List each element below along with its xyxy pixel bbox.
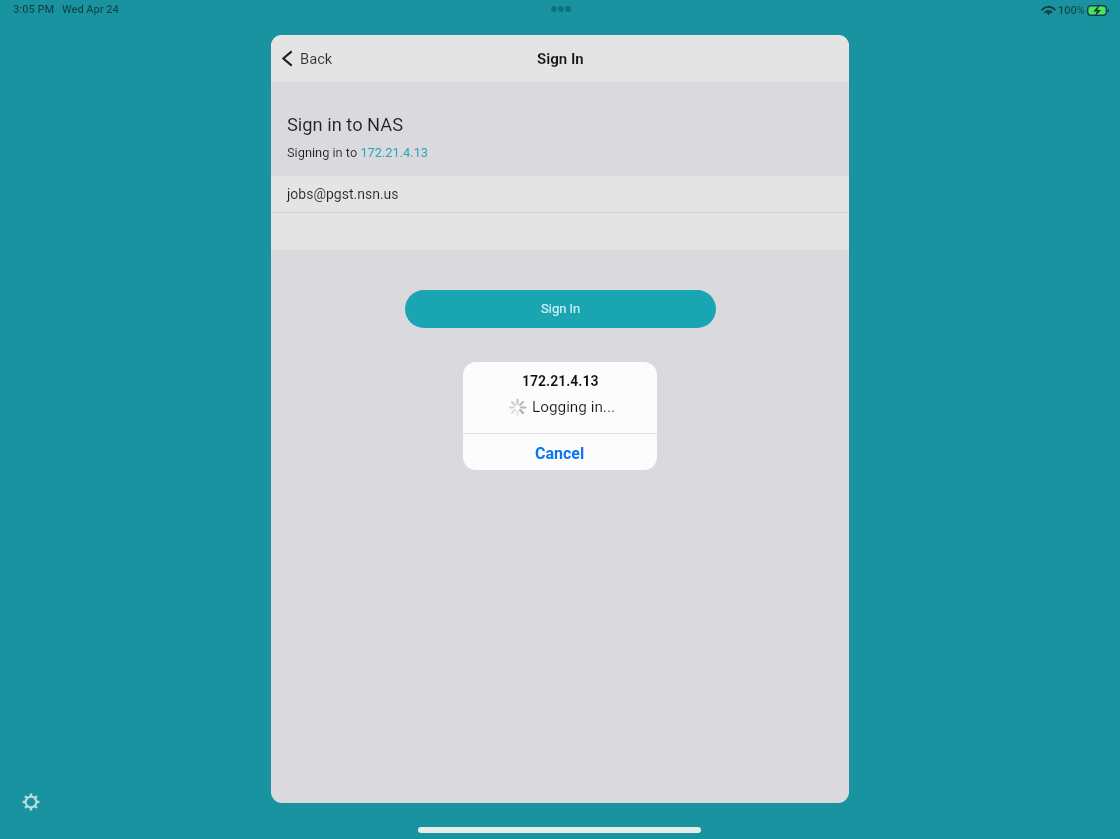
button[interactable]: Back (276, 44, 339, 73)
button[interactable]: jobs@pgst.nsn.us (271, 176, 849, 212)
staticText: Back (300, 50, 333, 67)
staticText: Sign in to NAS (287, 114, 404, 135)
staticText: Sign In (541, 301, 581, 316)
button[interactable]: Sign In (405, 290, 716, 328)
button[interactable]: Cancel (463, 434, 657, 470)
staticText: Signing in to 172.21.4.13 (287, 145, 429, 160)
staticText: 3:05 PM (13, 3, 55, 16)
staticText: jobs@pgst.nsn.us (287, 186, 399, 202)
staticText: Sign In (537, 50, 584, 68)
staticText: 100% (1058, 4, 1085, 17)
staticText: Wed Apr 24 (62, 3, 119, 16)
button[interactable]: Settings (18, 789, 44, 815)
staticText: 172.21.4.13 (522, 373, 599, 389)
staticText: Cancel (535, 444, 585, 463)
staticText: Logging in... (532, 398, 615, 416)
